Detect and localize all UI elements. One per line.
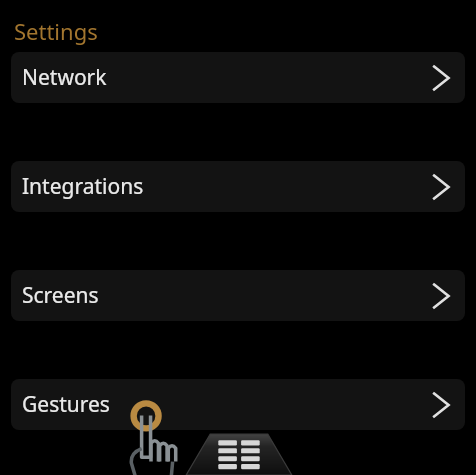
button[interactable]: Gestures bbox=[11, 379, 465, 430]
staticText: Screens bbox=[22, 281, 99, 310]
button[interactable]: Integrations bbox=[11, 161, 465, 212]
staticText: Integrations bbox=[22, 172, 144, 201]
button[interactable]: Apps grid bbox=[179, 431, 299, 475]
button[interactable]: Network bbox=[11, 52, 465, 103]
staticText: Settings bbox=[14, 16, 98, 46]
staticText: Gestures bbox=[22, 390, 110, 419]
staticText: Network bbox=[22, 63, 107, 92]
button[interactable]: Screens bbox=[11, 270, 465, 321]
